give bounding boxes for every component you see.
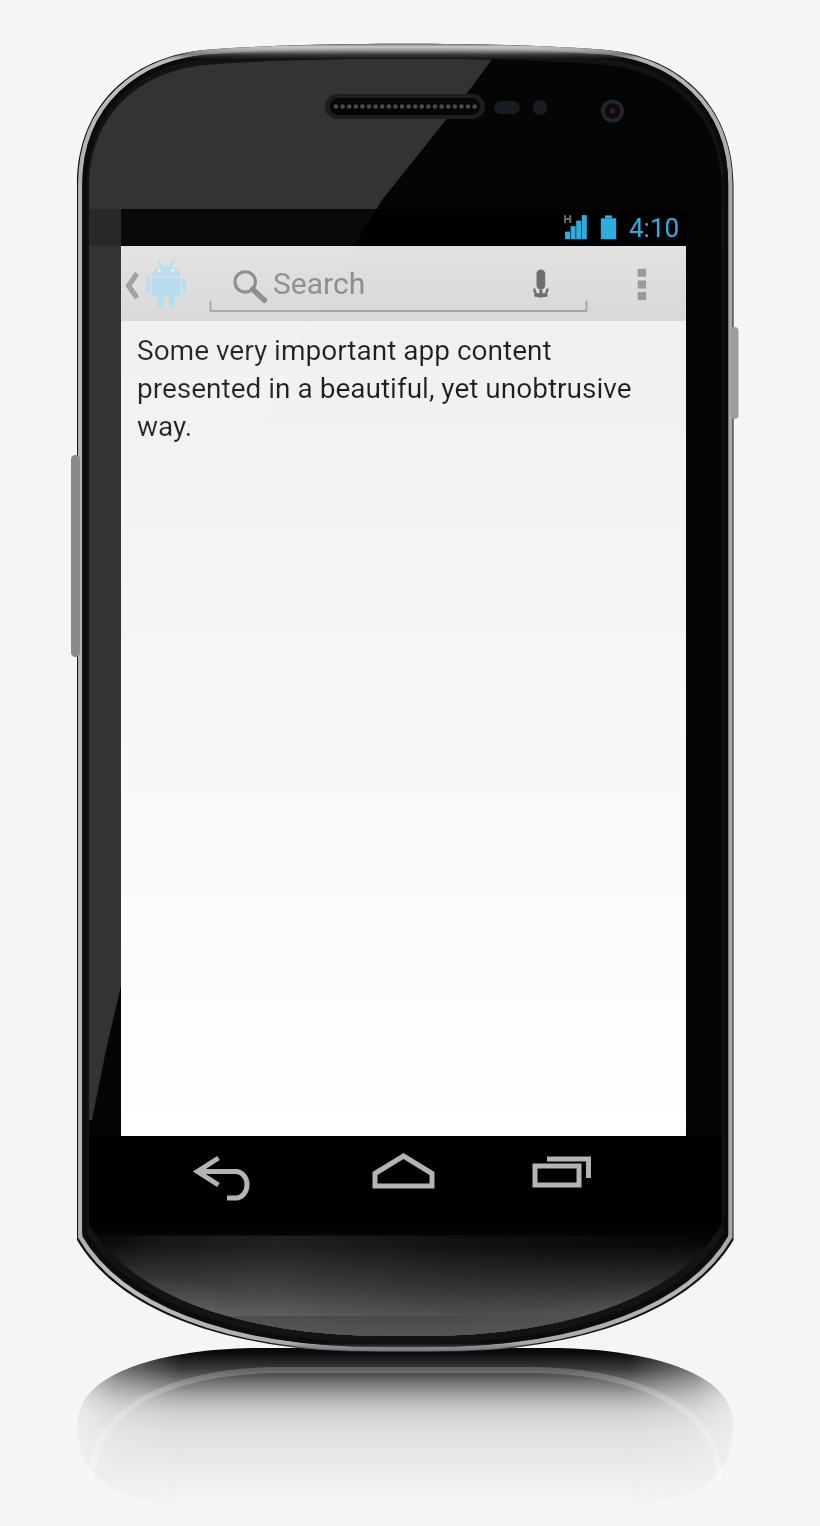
button[interactable]: Search	[210, 246, 587, 321]
button[interactable]: Home	[344, 1136, 464, 1208]
staticText: Some very important app content presente…	[137, 334, 652, 443]
staticText: Search	[273, 266, 366, 301]
button[interactable]: Recent apps	[502, 1136, 622, 1208]
button[interactable]: Voice search	[513, 246, 569, 321]
staticText: 4:10	[629, 213, 680, 243]
button[interactable]: More options	[615, 246, 671, 321]
button[interactable]: Navigate up	[125, 246, 205, 321]
button[interactable]: Back	[187, 1136, 307, 1208]
